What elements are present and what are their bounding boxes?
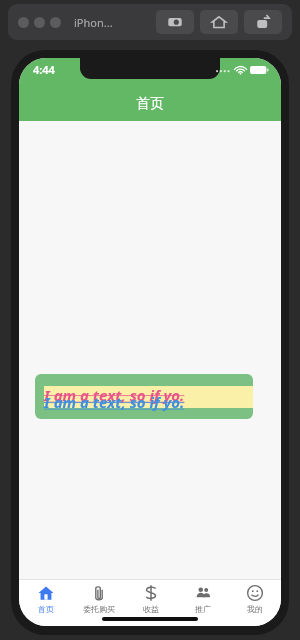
button[interactable]: I am a text, so if yo. bbox=[35, 374, 253, 419]
button[interactable]: Home bbox=[200, 10, 238, 34]
button[interactable]: 我的 bbox=[229, 580, 281, 626]
staticText: I am a text, so if yo. bbox=[44, 385, 185, 405]
button[interactable]: Window control bbox=[34, 17, 45, 28]
button[interactable]: 首页 bbox=[19, 580, 72, 626]
staticText: 首页 bbox=[38, 604, 54, 614]
button[interactable]: Window control bbox=[50, 17, 61, 28]
staticText: 委托购买 bbox=[83, 604, 115, 614]
button[interactable]: Window control bbox=[18, 17, 29, 28]
button[interactable]: 收益 bbox=[125, 580, 177, 626]
staticText: 4:44 bbox=[33, 62, 55, 77]
button[interactable]: Rotate bbox=[244, 10, 282, 34]
button[interactable]: 委托购买 bbox=[72, 580, 125, 626]
button[interactable]: Screenshot bbox=[156, 10, 194, 34]
staticText: iPhon... bbox=[74, 15, 113, 30]
staticText: 推广 bbox=[195, 604, 211, 614]
staticText: 我的 bbox=[247, 604, 263, 614]
staticText: 收益 bbox=[143, 604, 159, 614]
staticText: 首页 bbox=[136, 95, 164, 113]
staticText: I am a text, so if yo. bbox=[44, 392, 185, 412]
button[interactable]: 推广 bbox=[177, 580, 229, 626]
